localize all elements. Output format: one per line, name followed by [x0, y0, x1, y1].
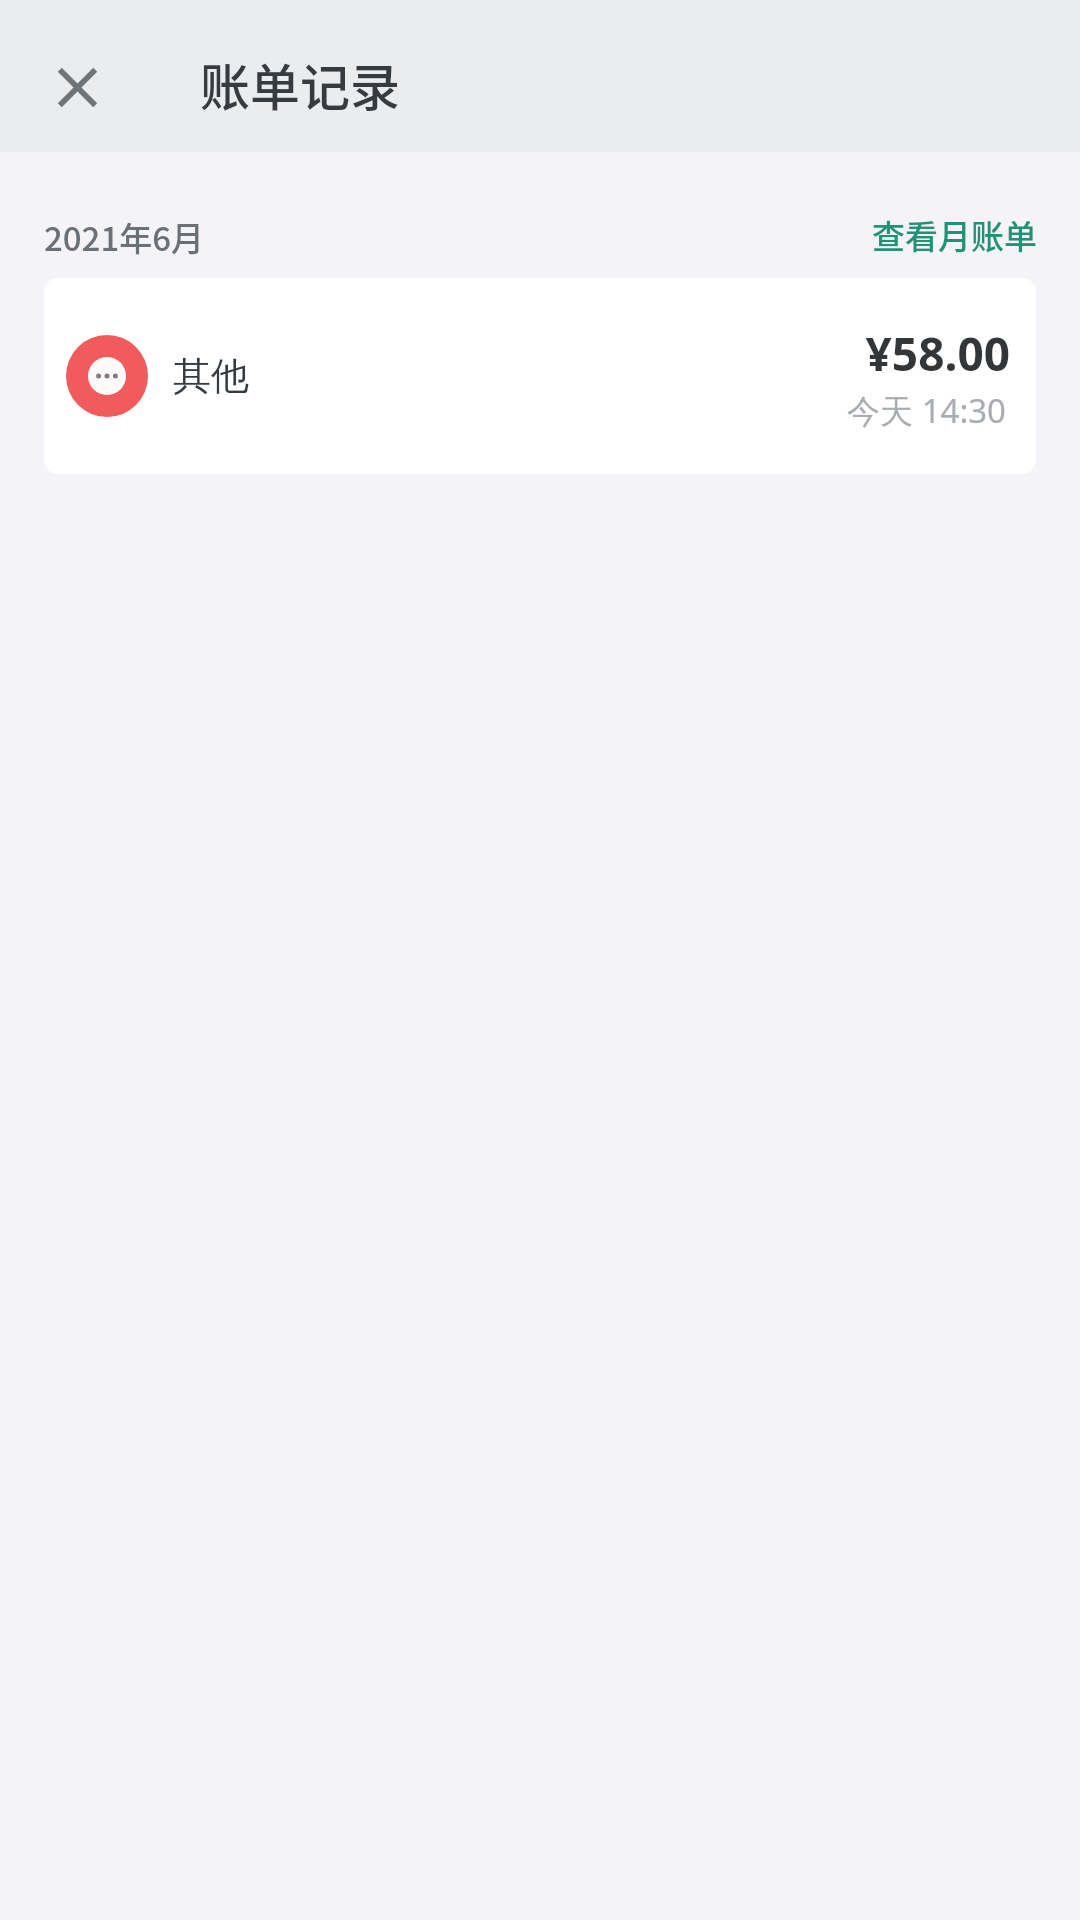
button[interactable]: 其他	[44, 278, 1036, 474]
staticText: 2021年6月	[44, 213, 205, 261]
button[interactable]: Close	[33, 43, 121, 131]
button[interactable]: 查看月账单	[852, 195, 1057, 275]
staticText: ¥58.00	[865, 322, 1010, 385]
staticText: 今天 14:30	[847, 388, 1006, 433]
staticText: 查看月账单	[872, 211, 1037, 259]
staticText: 账单记录	[200, 48, 400, 120]
staticText: 其他	[173, 352, 249, 400]
